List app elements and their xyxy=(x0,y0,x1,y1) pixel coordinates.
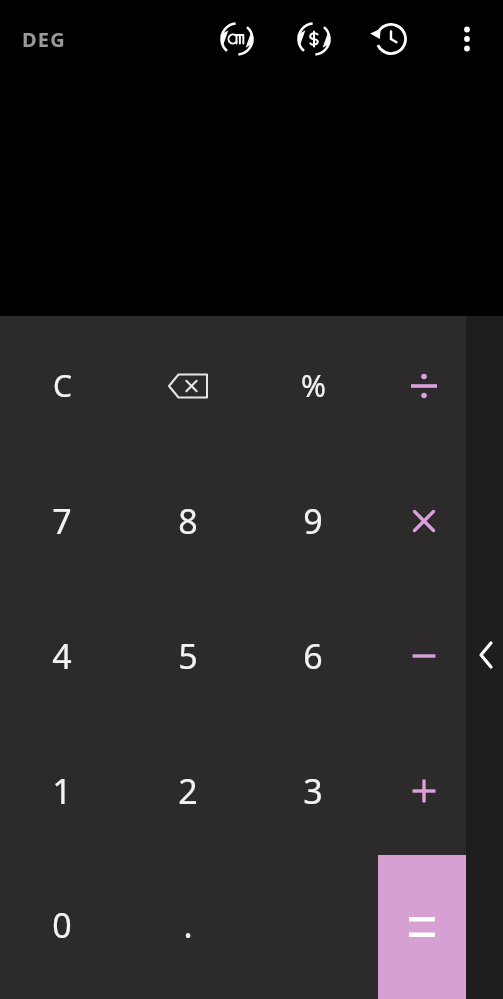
button[interactable]: 5 xyxy=(125,588,251,723)
button[interactable]: History xyxy=(365,13,417,65)
button[interactable]: Multiply xyxy=(361,453,487,588)
button[interactable]: 7 xyxy=(0,453,125,588)
button[interactable]: 3 xyxy=(250,723,376,858)
button[interactable]: Equals xyxy=(378,855,466,999)
button[interactable]: Expand scientific keypad xyxy=(466,316,503,999)
staticText: 6 xyxy=(303,633,323,679)
button[interactable]: DEG xyxy=(14,18,84,60)
button[interactable]: Subtract xyxy=(361,588,487,723)
staticText: 0 xyxy=(52,902,72,948)
button[interactable]: 9 xyxy=(250,453,376,588)
button[interactable]: 4 xyxy=(0,588,125,723)
button[interactable]: Backspace xyxy=(125,318,251,453)
button[interactable]: 8 xyxy=(125,453,251,588)
staticText: 7 xyxy=(52,498,72,544)
button[interactable]: Currency converter xyxy=(288,13,340,65)
button[interactable]: 0 xyxy=(0,857,125,992)
button[interactable]: 6 xyxy=(250,588,376,723)
button[interactable]: Add xyxy=(361,723,487,858)
staticText: DEG xyxy=(22,26,66,53)
staticText: 4 xyxy=(52,633,72,679)
button[interactable]: Divide xyxy=(361,318,487,453)
staticText: C xyxy=(53,365,72,406)
staticText: 8 xyxy=(178,498,198,544)
button[interactable]: 2 xyxy=(125,723,251,858)
button[interactable]: 1 xyxy=(0,723,125,858)
button[interactable]: . xyxy=(125,857,251,992)
staticText: % xyxy=(301,365,326,406)
button[interactable]: % xyxy=(250,318,376,453)
button[interactable]: More options xyxy=(441,13,493,65)
staticText: . xyxy=(183,902,193,948)
button[interactable]: C xyxy=(0,318,125,453)
button[interactable]: Unit converter xyxy=(211,13,263,65)
staticText: 9 xyxy=(303,498,323,544)
staticText: 3 xyxy=(303,768,323,814)
staticText: 5 xyxy=(178,633,198,679)
staticText: 2 xyxy=(178,768,198,814)
staticText: 1 xyxy=(52,768,72,814)
